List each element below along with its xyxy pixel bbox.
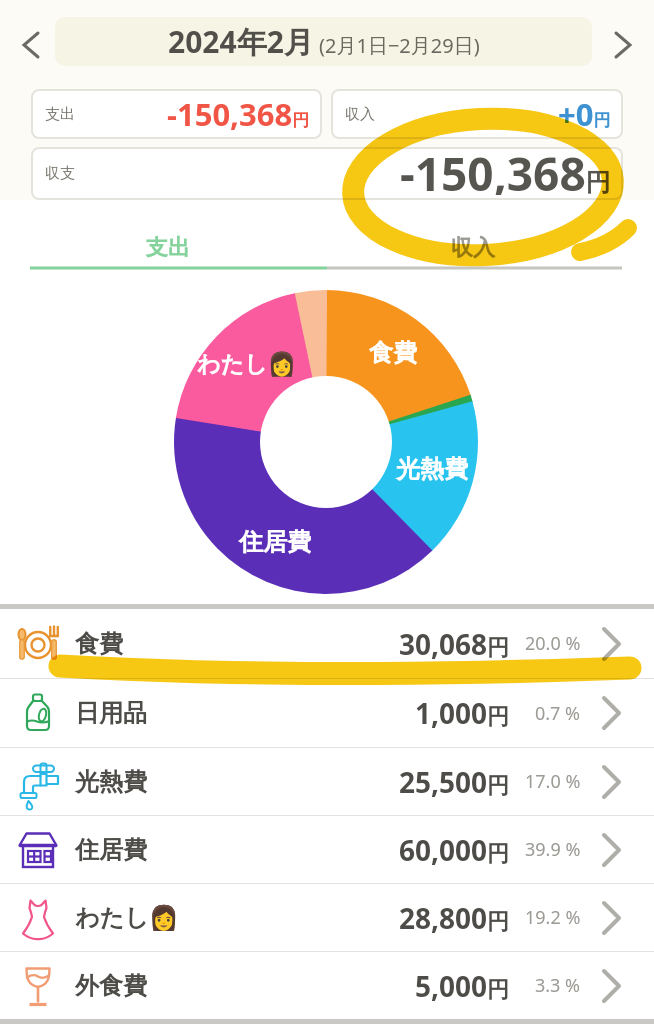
button[interactable]: 日用品 bbox=[0, 679, 654, 747]
staticText: 3.3 % bbox=[535, 973, 581, 998]
button[interactable]: 外食費 bbox=[0, 952, 654, 1019]
button[interactable]: 支出 bbox=[0, 200, 327, 270]
staticText: 住居費 bbox=[239, 527, 311, 557]
button[interactable]: 2024年2月 (2月1日−2月29日) bbox=[55, 17, 592, 66]
button[interactable]: 食費 bbox=[0, 609, 654, 678]
staticText: 19.2 % bbox=[525, 905, 581, 930]
staticText: 28,800円 bbox=[399, 899, 510, 937]
staticText: 39.9 % bbox=[525, 837, 581, 862]
staticText: 収入 bbox=[345, 105, 375, 124]
staticText: 17.0 % bbox=[525, 769, 581, 794]
staticText: 5,000円 bbox=[415, 967, 510, 1005]
staticText: 光熱費 bbox=[75, 767, 147, 797]
staticText: 外食費 bbox=[75, 971, 147, 1001]
staticText: 収入 bbox=[451, 234, 495, 262]
button[interactable]: 住居費 bbox=[0, 816, 654, 883]
staticText: 30,068円 bbox=[399, 625, 510, 663]
staticText: 収支 bbox=[45, 164, 75, 183]
button[interactable]: 光熱費 bbox=[0, 748, 654, 815]
staticText: 20.0 % bbox=[525, 631, 581, 656]
button[interactable]: 収支 bbox=[31, 147, 623, 200]
staticText: +0円 bbox=[558, 93, 611, 135]
staticText: 0.7 % bbox=[535, 701, 581, 726]
staticText: 支出 bbox=[45, 105, 75, 124]
button[interactable]: わたし👩 bbox=[0, 884, 654, 951]
button[interactable] bbox=[606, 28, 640, 62]
staticText: 光熱費 bbox=[396, 454, 468, 484]
staticText: -150,368円 bbox=[167, 93, 310, 135]
button[interactable]: 収入 bbox=[331, 89, 623, 139]
staticText: 60,000円 bbox=[399, 831, 510, 869]
button[interactable]: 収入 bbox=[327, 200, 654, 270]
staticText: 25,500円 bbox=[399, 763, 510, 801]
staticText: 2024年2月 (2月1日−2月29日) bbox=[168, 21, 480, 62]
staticText: 住居費 bbox=[75, 835, 147, 865]
staticText: 食費 bbox=[369, 338, 417, 368]
staticText: 日用品 bbox=[75, 698, 147, 728]
staticText: 食費 bbox=[75, 629, 123, 659]
staticText: わたし👩 bbox=[75, 903, 179, 933]
staticText: わたし👩 bbox=[197, 350, 297, 379]
button[interactable]: 支出 bbox=[31, 89, 322, 139]
staticText: 支出 bbox=[146, 234, 190, 262]
button[interactable] bbox=[14, 28, 48, 62]
staticText: -150,368円 bbox=[400, 142, 611, 195]
staticText: 1,000円 bbox=[415, 694, 510, 732]
